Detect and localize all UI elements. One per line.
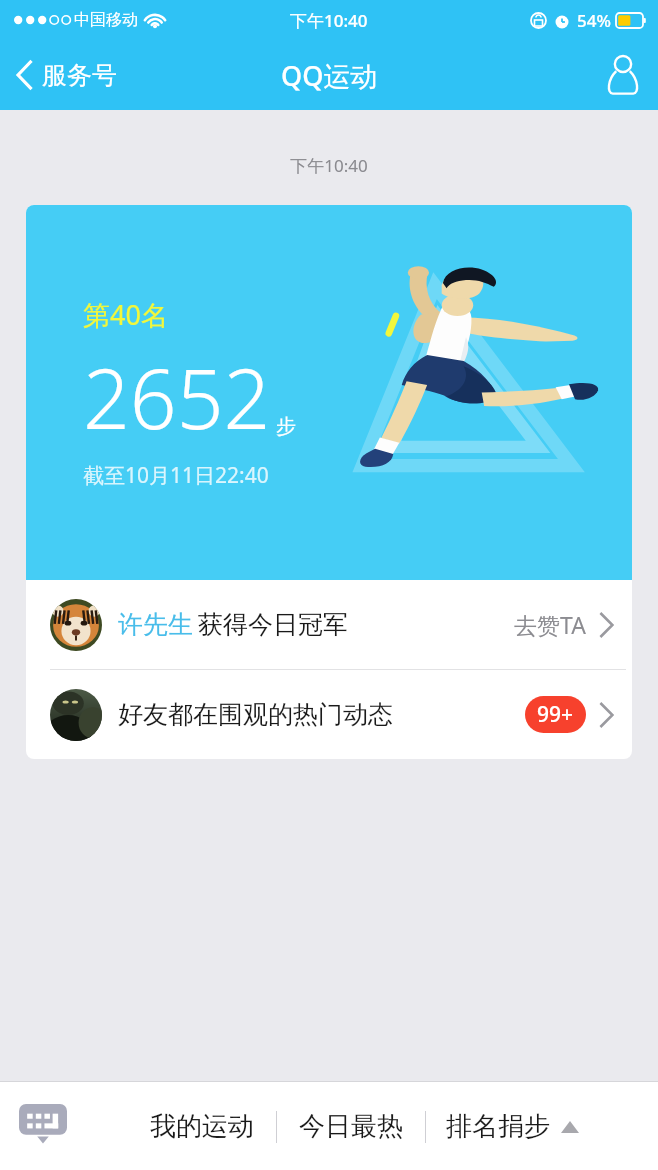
button[interactable]: 许先生	[26, 580, 632, 669]
button[interactable]: 我的运动	[128, 1100, 276, 1153]
staticText: 许先生	[118, 609, 193, 640]
staticText: 排名捐步	[446, 1110, 550, 1143]
button[interactable]: 服务号	[0, 40, 131, 110]
staticText: 2652	[83, 341, 271, 453]
staticText: 服务号	[42, 60, 117, 91]
button[interactable]: 第40名	[26, 205, 632, 580]
staticText: 我的运动	[150, 1110, 254, 1143]
staticText: 步	[276, 414, 296, 439]
staticText: 好友都在围观的热门动态	[118, 699, 393, 730]
staticText: 下午10:40	[290, 9, 368, 32]
staticText: 54%	[577, 9, 611, 32]
staticText: 今日最热	[299, 1110, 403, 1143]
button[interactable]: Profile	[588, 40, 658, 110]
staticText: 第40名	[83, 296, 168, 333]
staticText: 截至10月11日22:40	[83, 461, 269, 490]
staticText: 去赞TA	[514, 609, 586, 640]
button[interactable]: 好友都在围观的热门动态	[26, 670, 632, 759]
staticText: 获得今日冠军	[198, 609, 348, 640]
staticText: 中国移动	[74, 10, 138, 30]
button[interactable]: 排名捐步	[426, 1100, 600, 1153]
staticText: 下午10:40	[0, 154, 658, 177]
button[interactable]: Keyboard	[12, 1095, 74, 1157]
button[interactable]: 今日最热	[277, 1100, 425, 1153]
staticText: 99+	[537, 700, 574, 729]
staticText: QQ运动	[281, 57, 378, 94]
